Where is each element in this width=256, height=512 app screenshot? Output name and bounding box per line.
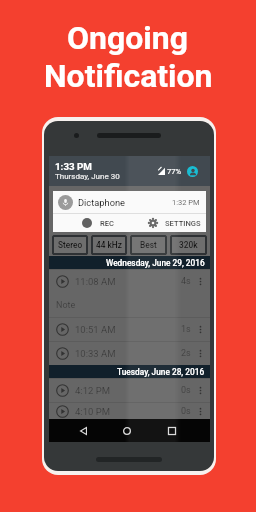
staticText: 4:12 PM: [75, 385, 110, 396]
other: Signal: [158, 167, 165, 175]
button[interactable]: 4:10 PM: [49, 402, 210, 419]
button[interactable]: SETTINGS: [118, 214, 206, 232]
staticText: Thursday, June 30: [55, 172, 120, 181]
staticText: 320k: [179, 240, 198, 250]
staticText: 1s: [181, 324, 191, 335]
staticText: 44 kHz: [96, 240, 122, 250]
button[interactable]: Best: [130, 235, 167, 255]
staticText: Notification: [44, 57, 213, 95]
staticText: Best: [140, 240, 157, 250]
button[interactable]: 11:08 AM: [49, 269, 210, 293]
staticText: 77%: [167, 167, 182, 176]
button[interactable]: 4:12 PM: [49, 378, 210, 402]
staticText: 4s: [181, 276, 191, 287]
staticText: Tuesday, June 28, 2016: [117, 367, 205, 377]
staticText: Wednesday, June 29, 2016: [106, 258, 205, 268]
button[interactable]: 320k: [170, 235, 207, 255]
other: More options: [196, 324, 205, 335]
staticText: Stereo: [58, 240, 83, 250]
staticText: 10:51 AM: [75, 324, 116, 335]
button[interactable]: REC: [53, 214, 118, 232]
button[interactable]: Stereo: [52, 235, 88, 255]
button[interactable]: Home: [115, 419, 139, 442]
staticText: Note: [56, 300, 76, 311]
other: More options: [196, 406, 205, 417]
staticText: 0s: [181, 385, 191, 396]
staticText: 1:32 PM: [172, 198, 200, 207]
button[interactable]: Recents: [160, 419, 184, 442]
staticText: Dictaphone: [78, 197, 126, 208]
staticText: 0s: [181, 406, 191, 417]
staticText: 2s: [181, 348, 191, 359]
staticText: 11:08 AM: [75, 276, 116, 287]
button[interactable]: 44 kHz: [91, 235, 127, 255]
staticText: 1:33 PM: [55, 161, 92, 172]
staticText: 4:10 PM: [75, 406, 110, 417]
button[interactable]: Back: [71, 419, 95, 442]
staticText: 10:33 AM: [75, 348, 116, 359]
staticText: Ongoing: [67, 19, 189, 57]
other: More options: [196, 385, 205, 396]
button[interactable]: 10:33 AM: [49, 341, 210, 365]
other: More options: [196, 276, 205, 287]
staticText: REC: [100, 219, 115, 228]
button[interactable]: 10:51 AM: [49, 317, 210, 341]
other: More options: [196, 348, 205, 359]
staticText: SETTINGS: [165, 219, 201, 228]
